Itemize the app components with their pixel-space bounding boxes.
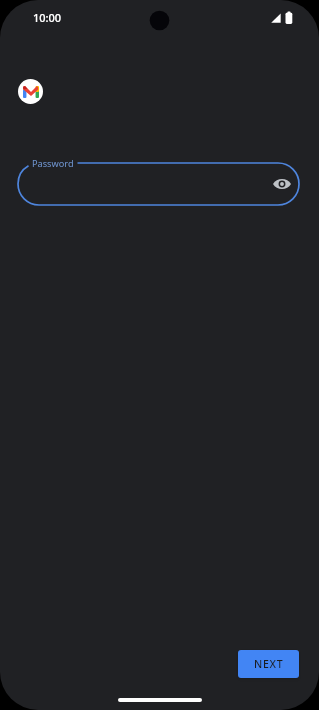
staticText: Password: [32, 157, 74, 170]
button[interactable]: Show password: [269, 171, 295, 197]
button[interactable]: NEXT: [238, 650, 299, 678]
staticText: NEXT: [254, 657, 284, 671]
button[interactable]: Password: [18, 163, 299, 205]
staticText: 10:00: [33, 10, 62, 25]
